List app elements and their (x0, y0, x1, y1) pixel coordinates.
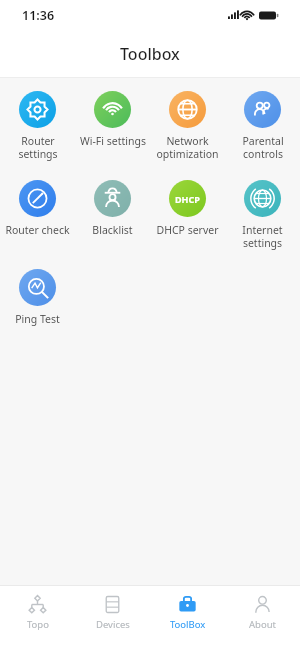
staticText: Wi-Fi settings (80, 134, 146, 148)
staticText: Topo (27, 618, 49, 631)
staticText: ToolBox (170, 618, 206, 631)
staticText: 11:36 (22, 7, 55, 24)
button[interactable]: Network optimization (150, 78, 225, 167)
button[interactable]: Parental controls (225, 78, 300, 167)
button[interactable]: DHCP server (150, 167, 225, 243)
staticText: Parental controls (242, 134, 284, 161)
button[interactable]: Devices (75, 586, 150, 649)
other: ToolBox (178, 595, 197, 614)
staticText: Ping Test (15, 312, 60, 326)
button[interactable]: About (225, 586, 300, 649)
staticText: Network optimization (156, 134, 219, 161)
staticText: About (249, 618, 276, 631)
button[interactable]: Topo (0, 586, 75, 649)
staticText: Internet settings (242, 223, 283, 250)
staticText: Router check (5, 223, 70, 237)
button[interactable]: Wi-Fi settings (75, 78, 150, 154)
other: Devices (103, 595, 122, 614)
staticText: DHCP server (156, 223, 219, 237)
button[interactable]: ToolBox (150, 586, 225, 649)
staticText: DHCP (175, 193, 200, 205)
staticText: Blacklist (92, 223, 133, 237)
button[interactable]: Router settings (0, 78, 75, 167)
staticText: Devices (96, 618, 130, 631)
button[interactable]: Blacklist (75, 167, 150, 243)
staticText: Toolbox (120, 43, 180, 65)
button[interactable]: Ping Test (0, 256, 75, 332)
button[interactable]: Router check (0, 167, 75, 243)
staticText: Router settings (18, 134, 58, 161)
other: Topo (28, 595, 47, 614)
button[interactable]: Internet settings (225, 167, 300, 256)
other: About (253, 595, 272, 614)
